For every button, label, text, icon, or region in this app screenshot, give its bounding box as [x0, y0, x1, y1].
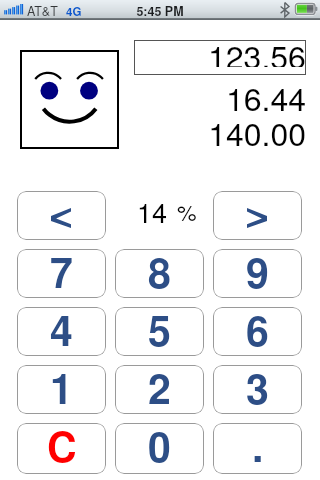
- button[interactable]: 3: [213, 365, 302, 414]
- staticText: 123.56: [208, 32, 306, 67]
- button[interactable]: 1: [17, 365, 106, 414]
- staticText: 6: [246, 307, 269, 349]
- staticText: 0: [148, 423, 171, 467]
- staticText: 4: [50, 307, 73, 349]
- button[interactable]: Increase tip: [213, 191, 302, 240]
- button[interactable]: 0: [115, 423, 204, 474]
- staticText: 3: [246, 365, 269, 407]
- button[interactable]: 4: [17, 307, 106, 356]
- staticText: 14: [137, 192, 168, 231]
- button[interactable]: 5: [115, 307, 204, 356]
- button[interactable]: Decrease tip: [17, 191, 106, 240]
- staticText: AT&T: [27, 2, 58, 20]
- staticText: 1: [50, 365, 73, 407]
- button[interactable]: 8: [115, 249, 204, 298]
- button[interactable]: C: [17, 423, 106, 474]
- staticText: 5:45 PM: [0, 2, 320, 20]
- staticText: %: [177, 196, 197, 228]
- button[interactable]: 123.56: [134, 40, 306, 75]
- button[interactable]: 2: [115, 365, 204, 414]
- button[interactable]: .: [213, 423, 302, 474]
- button[interactable]: 9: [213, 249, 302, 298]
- button[interactable]: 6: [213, 307, 302, 356]
- staticText: 140.00: [134, 109, 306, 155]
- staticText: 8: [148, 249, 171, 291]
- staticText: 2: [148, 365, 171, 407]
- staticText: 4G: [66, 3, 82, 19]
- staticText: .: [252, 423, 264, 467]
- staticText: 16.44: [134, 74, 306, 120]
- staticText: 5: [148, 307, 171, 349]
- staticText: C: [47, 423, 77, 467]
- staticText: 7: [50, 249, 73, 291]
- button[interactable]: Tip mood: [20, 50, 119, 149]
- staticText: 9: [246, 249, 269, 291]
- button[interactable]: 7: [17, 249, 106, 298]
- other: Bluetooth: [0, 0, 320, 20]
